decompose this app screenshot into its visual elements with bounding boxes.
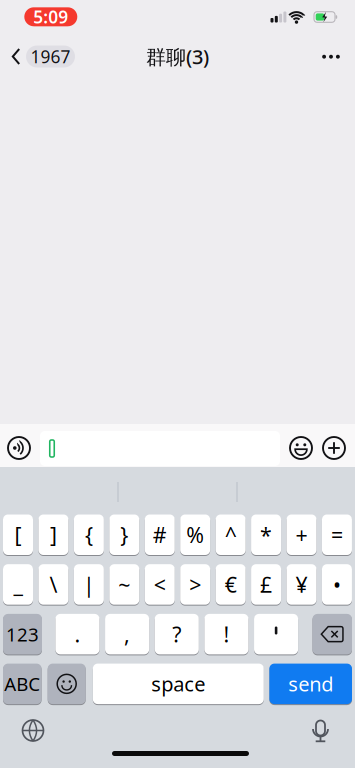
button[interactable]: > xyxy=(180,564,210,605)
staticText: _ xyxy=(13,570,22,599)
staticText: + xyxy=(295,521,307,549)
staticText: [ xyxy=(14,521,21,549)
staticText: space xyxy=(151,671,205,697)
button[interactable]: , xyxy=(105,613,149,655)
button[interactable]: ¥ xyxy=(286,564,316,605)
button[interactable]: ~ xyxy=(109,564,139,605)
button[interactable]: { xyxy=(74,514,104,555)
button[interactable]: Delete xyxy=(312,613,352,655)
button[interactable] xyxy=(254,613,298,655)
staticText: send xyxy=(288,671,333,697)
button[interactable]: ? xyxy=(155,613,199,655)
staticText: ^ xyxy=(225,521,237,549)
button[interactable]: Emoji xyxy=(290,437,312,459)
button[interactable]: \ xyxy=(38,564,68,605)
button[interactable]: = xyxy=(322,514,352,555)
button[interactable]: • xyxy=(322,564,352,605)
button[interactable]: < xyxy=(145,564,175,605)
button[interactable]: * xyxy=(251,514,281,555)
staticText: < xyxy=(154,570,166,599)
button[interactable]: % xyxy=(180,514,210,555)
staticText: | xyxy=(83,570,95,599)
button[interactable]: ] xyxy=(38,514,68,555)
staticText: > xyxy=(189,570,201,599)
staticText: \ xyxy=(49,570,57,599)
button[interactable]: £ xyxy=(251,564,281,605)
button[interactable]: Back xyxy=(11,45,75,68)
staticText: = xyxy=(331,521,343,549)
button[interactable]: space xyxy=(93,663,264,705)
button[interactable]: More xyxy=(317,45,345,69)
button[interactable]: . xyxy=(55,613,99,655)
staticText: * xyxy=(260,521,272,549)
staticText: ] xyxy=(50,521,57,549)
button[interactable]: 123 xyxy=(3,613,42,655)
button[interactable]: Next keyboard xyxy=(21,718,45,742)
staticText: { xyxy=(85,521,93,549)
button[interactable]: Dictate xyxy=(310,719,330,743)
button[interactable]: | xyxy=(74,564,104,605)
staticText: ? xyxy=(172,620,181,648)
button[interactable]: More actions xyxy=(323,437,345,459)
staticText: • xyxy=(333,570,341,599)
staticText: 1967 xyxy=(30,45,70,68)
button[interactable]: _ xyxy=(3,564,33,605)
staticText: ! xyxy=(223,620,229,648)
staticText: ¥ xyxy=(295,570,307,599)
button[interactable]: ^ xyxy=(216,514,246,555)
staticText: 123 xyxy=(6,622,39,647)
staticText: % xyxy=(186,521,204,549)
staticText: } xyxy=(120,521,128,549)
staticText: 5:09 xyxy=(33,5,68,28)
button[interactable]: Hold to talk xyxy=(8,437,30,459)
button[interactable]: € xyxy=(216,564,246,605)
staticText: € xyxy=(225,570,237,599)
staticText: # xyxy=(153,521,167,549)
button[interactable]: ! xyxy=(204,613,248,655)
button[interactable]: # xyxy=(145,514,175,555)
staticText: . xyxy=(74,620,80,648)
button[interactable]: Emoji keyboard xyxy=(48,663,86,705)
staticText: ~ xyxy=(118,570,130,599)
staticText: £ xyxy=(260,570,272,599)
button[interactable]: 5:09 xyxy=(24,5,77,28)
staticText: , xyxy=(124,620,130,648)
button[interactable]: + xyxy=(286,514,316,555)
staticText: 群聊(3) xyxy=(146,43,209,70)
button[interactable]: ABC xyxy=(3,663,42,705)
button[interactable]: send xyxy=(269,663,352,705)
button[interactable]: } xyxy=(109,514,139,555)
staticText: ABC xyxy=(4,671,40,696)
button[interactable]: [ xyxy=(3,514,33,555)
